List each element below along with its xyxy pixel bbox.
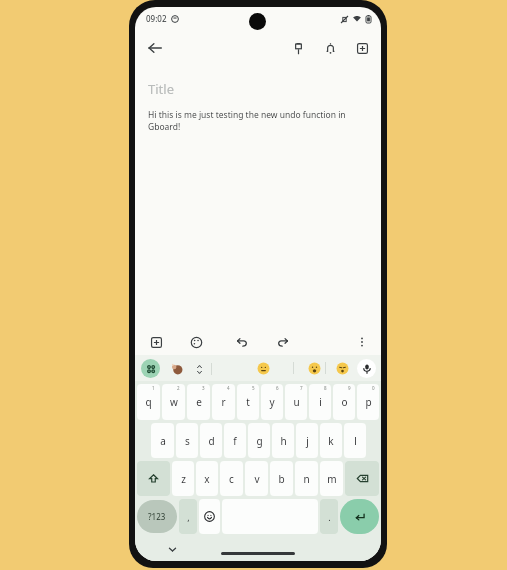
button[interactable]: e [187,384,210,420]
button[interactable]: o [333,384,355,420]
staticText: 3 [202,385,205,391]
staticText: z [181,472,186,486]
staticText: p [365,395,372,409]
staticText: f [233,434,237,448]
staticText: s [185,434,190,448]
button[interactable]: z [172,461,194,496]
button[interactable]: c [220,461,243,496]
button[interactable]: Color palette [183,329,209,355]
staticText: 5 [252,385,255,391]
staticText: n [303,472,310,486]
button[interactable]: v [245,461,268,496]
staticText: , [187,511,190,523]
button[interactable]: Archive [349,35,375,61]
button[interactable]: y [261,384,283,420]
staticText: 09:02 [146,13,167,24]
staticText: e [196,395,202,409]
button[interactable]: Undo [228,329,254,355]
button[interactable]: t [237,384,259,420]
staticText: b [278,472,285,486]
button[interactable]: n [295,461,318,496]
staticText: a [160,434,166,448]
staticText: t [246,395,250,409]
staticText: Title [148,80,174,98]
button[interactable]: q [137,384,160,420]
staticText: r [221,395,226,409]
button[interactable]: Emoji suggestion [305,359,323,377]
staticText: q [145,395,152,409]
staticText: i [319,395,322,409]
button[interactable]: Shift [137,461,170,496]
button[interactable]: Emoji [199,499,220,534]
button[interactable]: . [320,499,338,534]
button[interactable]: Emoji suggestion [254,359,272,377]
staticText: l [354,434,357,448]
button[interactable]: Back [141,34,169,62]
button[interactable]: w [162,384,185,420]
staticText: 6 [276,385,279,391]
staticText: 4 [227,385,230,391]
button[interactable]: i [309,384,331,420]
staticText: o [341,395,348,409]
staticText: 8 [324,385,327,391]
button[interactable]: Stickers [167,359,186,378]
button[interactable]: r [212,384,235,420]
button[interactable]: s [176,423,198,458]
button[interactable]: ?123 [137,500,177,533]
button[interactable]: Emoji suggestion [333,359,351,377]
button[interactable]: Backspace [345,461,379,496]
button[interactable]: d [200,423,222,458]
button[interactable]: g [248,423,270,458]
staticText: k [328,434,334,448]
button[interactable]: b [270,461,293,496]
button[interactable]: l [344,423,366,458]
button[interactable]: Pin [285,35,311,61]
button[interactable]: x [196,461,218,496]
staticText: y [269,395,275,409]
staticText: 1 [152,385,155,391]
button[interactable]: f [224,423,246,458]
staticText: . [328,511,331,523]
staticText: ?123 [148,511,166,522]
staticText: v [254,472,260,486]
staticText: 2 [177,385,180,391]
button[interactable]: j [296,423,318,458]
staticText: d [208,434,215,448]
button[interactable]: k [320,423,342,458]
button[interactable]: Toolbar [141,359,160,378]
button[interactable]: Voice input [357,359,376,378]
button[interactable]: Hide keyboard [163,540,181,558]
staticText: c [229,472,234,486]
button[interactable]: h [272,423,294,458]
button[interactable]: a [151,423,174,458]
staticText: 9 [348,385,351,391]
staticText: x [204,472,210,486]
button[interactable]: Reminder [317,35,343,61]
button[interactable]: p [357,384,379,420]
staticText: w [170,395,178,409]
button[interactable]: u [285,384,307,420]
staticText: m [327,472,337,486]
button[interactable]: Redo [270,329,296,355]
staticText: j [306,434,309,448]
button[interactable]: m [320,461,343,496]
staticText: Hi this is me just testing the new undo … [148,109,368,133]
button[interactable]: , [179,499,197,534]
button[interactable]: Enter [340,499,379,534]
button[interactable]: Add [143,329,169,355]
staticText: u [293,395,300,409]
button[interactable]: Expand suggestions [191,361,207,377]
staticText: g [256,434,263,448]
staticText: h [280,434,287,448]
staticText: 7 [300,385,303,391]
staticText: 0 [372,385,375,391]
button[interactable]: More options [351,331,373,353]
